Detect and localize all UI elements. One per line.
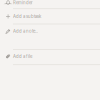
staticText: Add a file (13, 54, 32, 59)
staticText: Reminder (13, 0, 33, 5)
button[interactable]: Reminder (0, 0, 100, 7)
button[interactable]: Add a file (0, 52, 100, 61)
button[interactable]: Add a note... (0, 27, 100, 36)
staticText: Add a subtask (13, 14, 41, 19)
button[interactable]: Add a subtask (0, 12, 100, 21)
staticText: Add a note... (13, 29, 38, 34)
